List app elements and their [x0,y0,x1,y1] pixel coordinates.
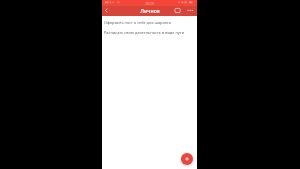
button[interactable]: Back [102,6,113,16]
staticText: Оформить пост о себе для шаринга [104,20,171,25]
button[interactable]: More options [185,6,196,16]
button[interactable]: Расписать свою деятельность в виде пути [102,26,197,36]
staticText: 20:15 [145,1,154,6]
button[interactable]: Messages [172,6,183,16]
staticText: Расписать свою деятельность в виде пути [104,30,185,35]
button[interactable]: Оформить пост о себе для шаринга [102,16,197,26]
button[interactable]: Add note [181,153,193,165]
staticText: Личное [140,7,160,14]
